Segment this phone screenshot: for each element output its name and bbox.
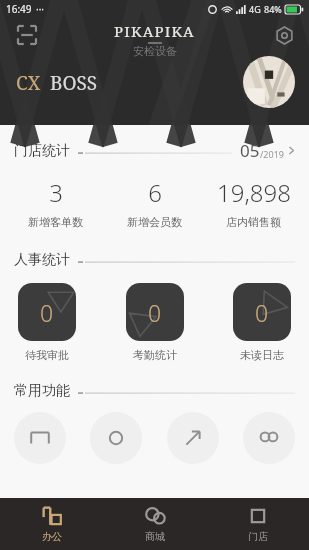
- button[interactable]: 头像: [243, 56, 295, 108]
- button[interactable]: 设置: [271, 22, 297, 48]
- button[interactable]: 功能: [90, 412, 142, 464]
- staticText: 6: [148, 176, 162, 209]
- button[interactable]: 门店: [206, 498, 309, 550]
- staticText: 办公: [42, 530, 62, 543]
- staticText: 门店统计: [14, 142, 70, 160]
- button[interactable]: 商城: [103, 498, 206, 550]
- staticText: 4G: [249, 3, 261, 15]
- staticText: /2019: [260, 148, 284, 160]
- staticText: 16:49: [6, 2, 32, 16]
- button[interactable]: 0: [18, 283, 76, 341]
- button[interactable]: 门店统计: [14, 139, 295, 162]
- staticText: PIKAPIKA: [114, 21, 195, 41]
- button[interactable]: 功能: [14, 412, 66, 464]
- button[interactable]: 功能: [167, 412, 219, 464]
- staticText: 店内销售额: [226, 215, 281, 229]
- staticText: 3: [49, 176, 63, 209]
- staticText: 人事统计: [14, 251, 70, 269]
- staticText: 考勤统计: [133, 348, 177, 362]
- staticText: 门店: [248, 530, 268, 543]
- button[interactable]: 3: [6, 176, 105, 229]
- staticText: 19,898: [217, 176, 291, 209]
- button[interactable]: 6: [105, 176, 204, 229]
- button[interactable]: 19,898: [204, 176, 303, 229]
- staticText: CX: [16, 70, 41, 96]
- staticText: 新增客单数: [28, 215, 83, 229]
- staticText: 商城: [145, 530, 165, 543]
- staticText: 待我审批: [25, 348, 69, 362]
- button[interactable]: 办公: [0, 498, 103, 550]
- staticText: 安检设备: [133, 44, 177, 58]
- staticText: 05: [240, 139, 260, 162]
- staticText: 未读日志: [240, 348, 284, 362]
- staticText: 0: [40, 297, 54, 328]
- staticText: 常用功能: [14, 382, 70, 400]
- button[interactable]: 0: [233, 283, 291, 341]
- button[interactable]: CX: [16, 70, 98, 96]
- staticText: 0: [255, 297, 269, 328]
- staticText: 新增会员数: [127, 215, 182, 229]
- staticText: BOSS: [50, 70, 98, 96]
- button[interactable]: 0: [126, 283, 184, 341]
- button[interactable]: 功能: [243, 412, 295, 464]
- staticText: ···: [36, 2, 45, 16]
- button[interactable]: 扫一扫: [14, 22, 40, 48]
- staticText: 84%: [264, 3, 282, 15]
- staticText: 0: [148, 297, 162, 328]
